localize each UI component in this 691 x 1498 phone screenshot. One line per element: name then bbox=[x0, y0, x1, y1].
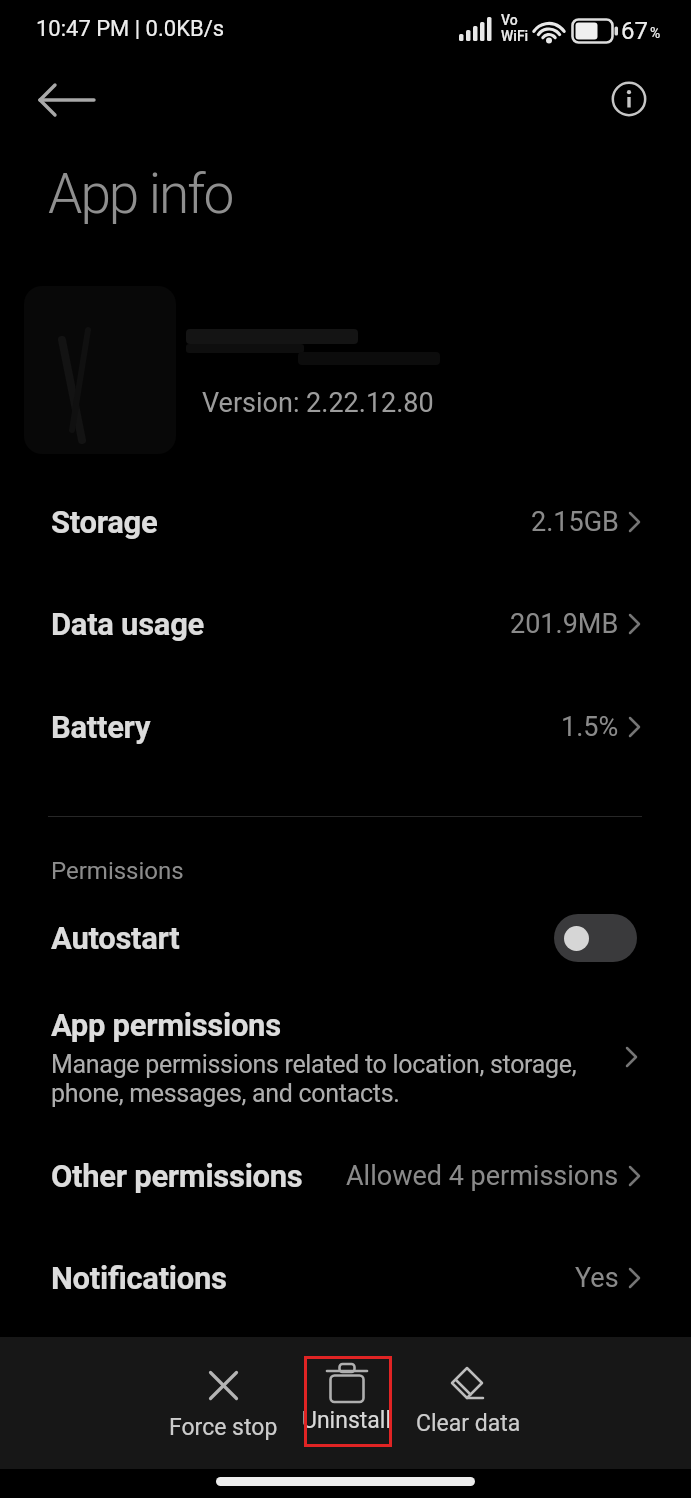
staticText: Manage permissions related to location, … bbox=[51, 1050, 577, 1108]
staticText: Vo bbox=[501, 12, 518, 28]
button[interactable] bbox=[554, 914, 637, 962]
button[interactable] bbox=[605, 75, 653, 123]
staticText: Allowed 4 permissions bbox=[346, 1160, 619, 1192]
staticText: Data usage bbox=[51, 606, 204, 642]
button[interactable]: Data usage bbox=[0, 592, 691, 656]
staticText: Uninstall bbox=[302, 1407, 392, 1434]
staticText: Force stop bbox=[169, 1414, 278, 1441]
button[interactable]: Other permissions bbox=[0, 1144, 691, 1208]
staticText: Other permissions bbox=[51, 1158, 303, 1194]
staticText: Battery bbox=[51, 709, 151, 745]
staticText: WiFi bbox=[501, 28, 529, 44]
button[interactable]: Storage bbox=[0, 490, 691, 554]
staticText: Permissions bbox=[51, 857, 184, 885]
staticText: 1.5% bbox=[561, 711, 619, 743]
staticText: Version: 2.22.12.80 bbox=[202, 387, 434, 419]
staticText: Clear data bbox=[416, 1410, 521, 1437]
staticText: 201.9MB bbox=[510, 608, 619, 640]
staticText: % bbox=[650, 25, 661, 41]
button[interactable] bbox=[36, 76, 98, 124]
button[interactable]: Battery bbox=[0, 695, 691, 759]
staticText: Notifications bbox=[51, 1260, 227, 1296]
staticText: Autostart bbox=[51, 920, 180, 956]
staticText: Storage bbox=[51, 504, 158, 540]
staticText: App permissions bbox=[51, 1007, 281, 1043]
staticText: 10:47 PM | 0.0KB/s bbox=[36, 16, 225, 42]
staticText: 67 bbox=[621, 17, 648, 45]
button[interactable]: Clear data bbox=[408, 1366, 528, 1437]
staticText: App info bbox=[48, 162, 233, 226]
button[interactable]: Uninstall bbox=[287, 1362, 407, 1434]
button[interactable]: Autostart bbox=[0, 906, 691, 970]
button[interactable]: Force stop bbox=[158, 1370, 288, 1441]
button[interactable]: App permissions bbox=[0, 995, 691, 1125]
staticText: Yes bbox=[575, 1262, 619, 1294]
staticText: 2.15GB bbox=[531, 506, 619, 538]
button[interactable]: Notifications bbox=[0, 1246, 691, 1310]
